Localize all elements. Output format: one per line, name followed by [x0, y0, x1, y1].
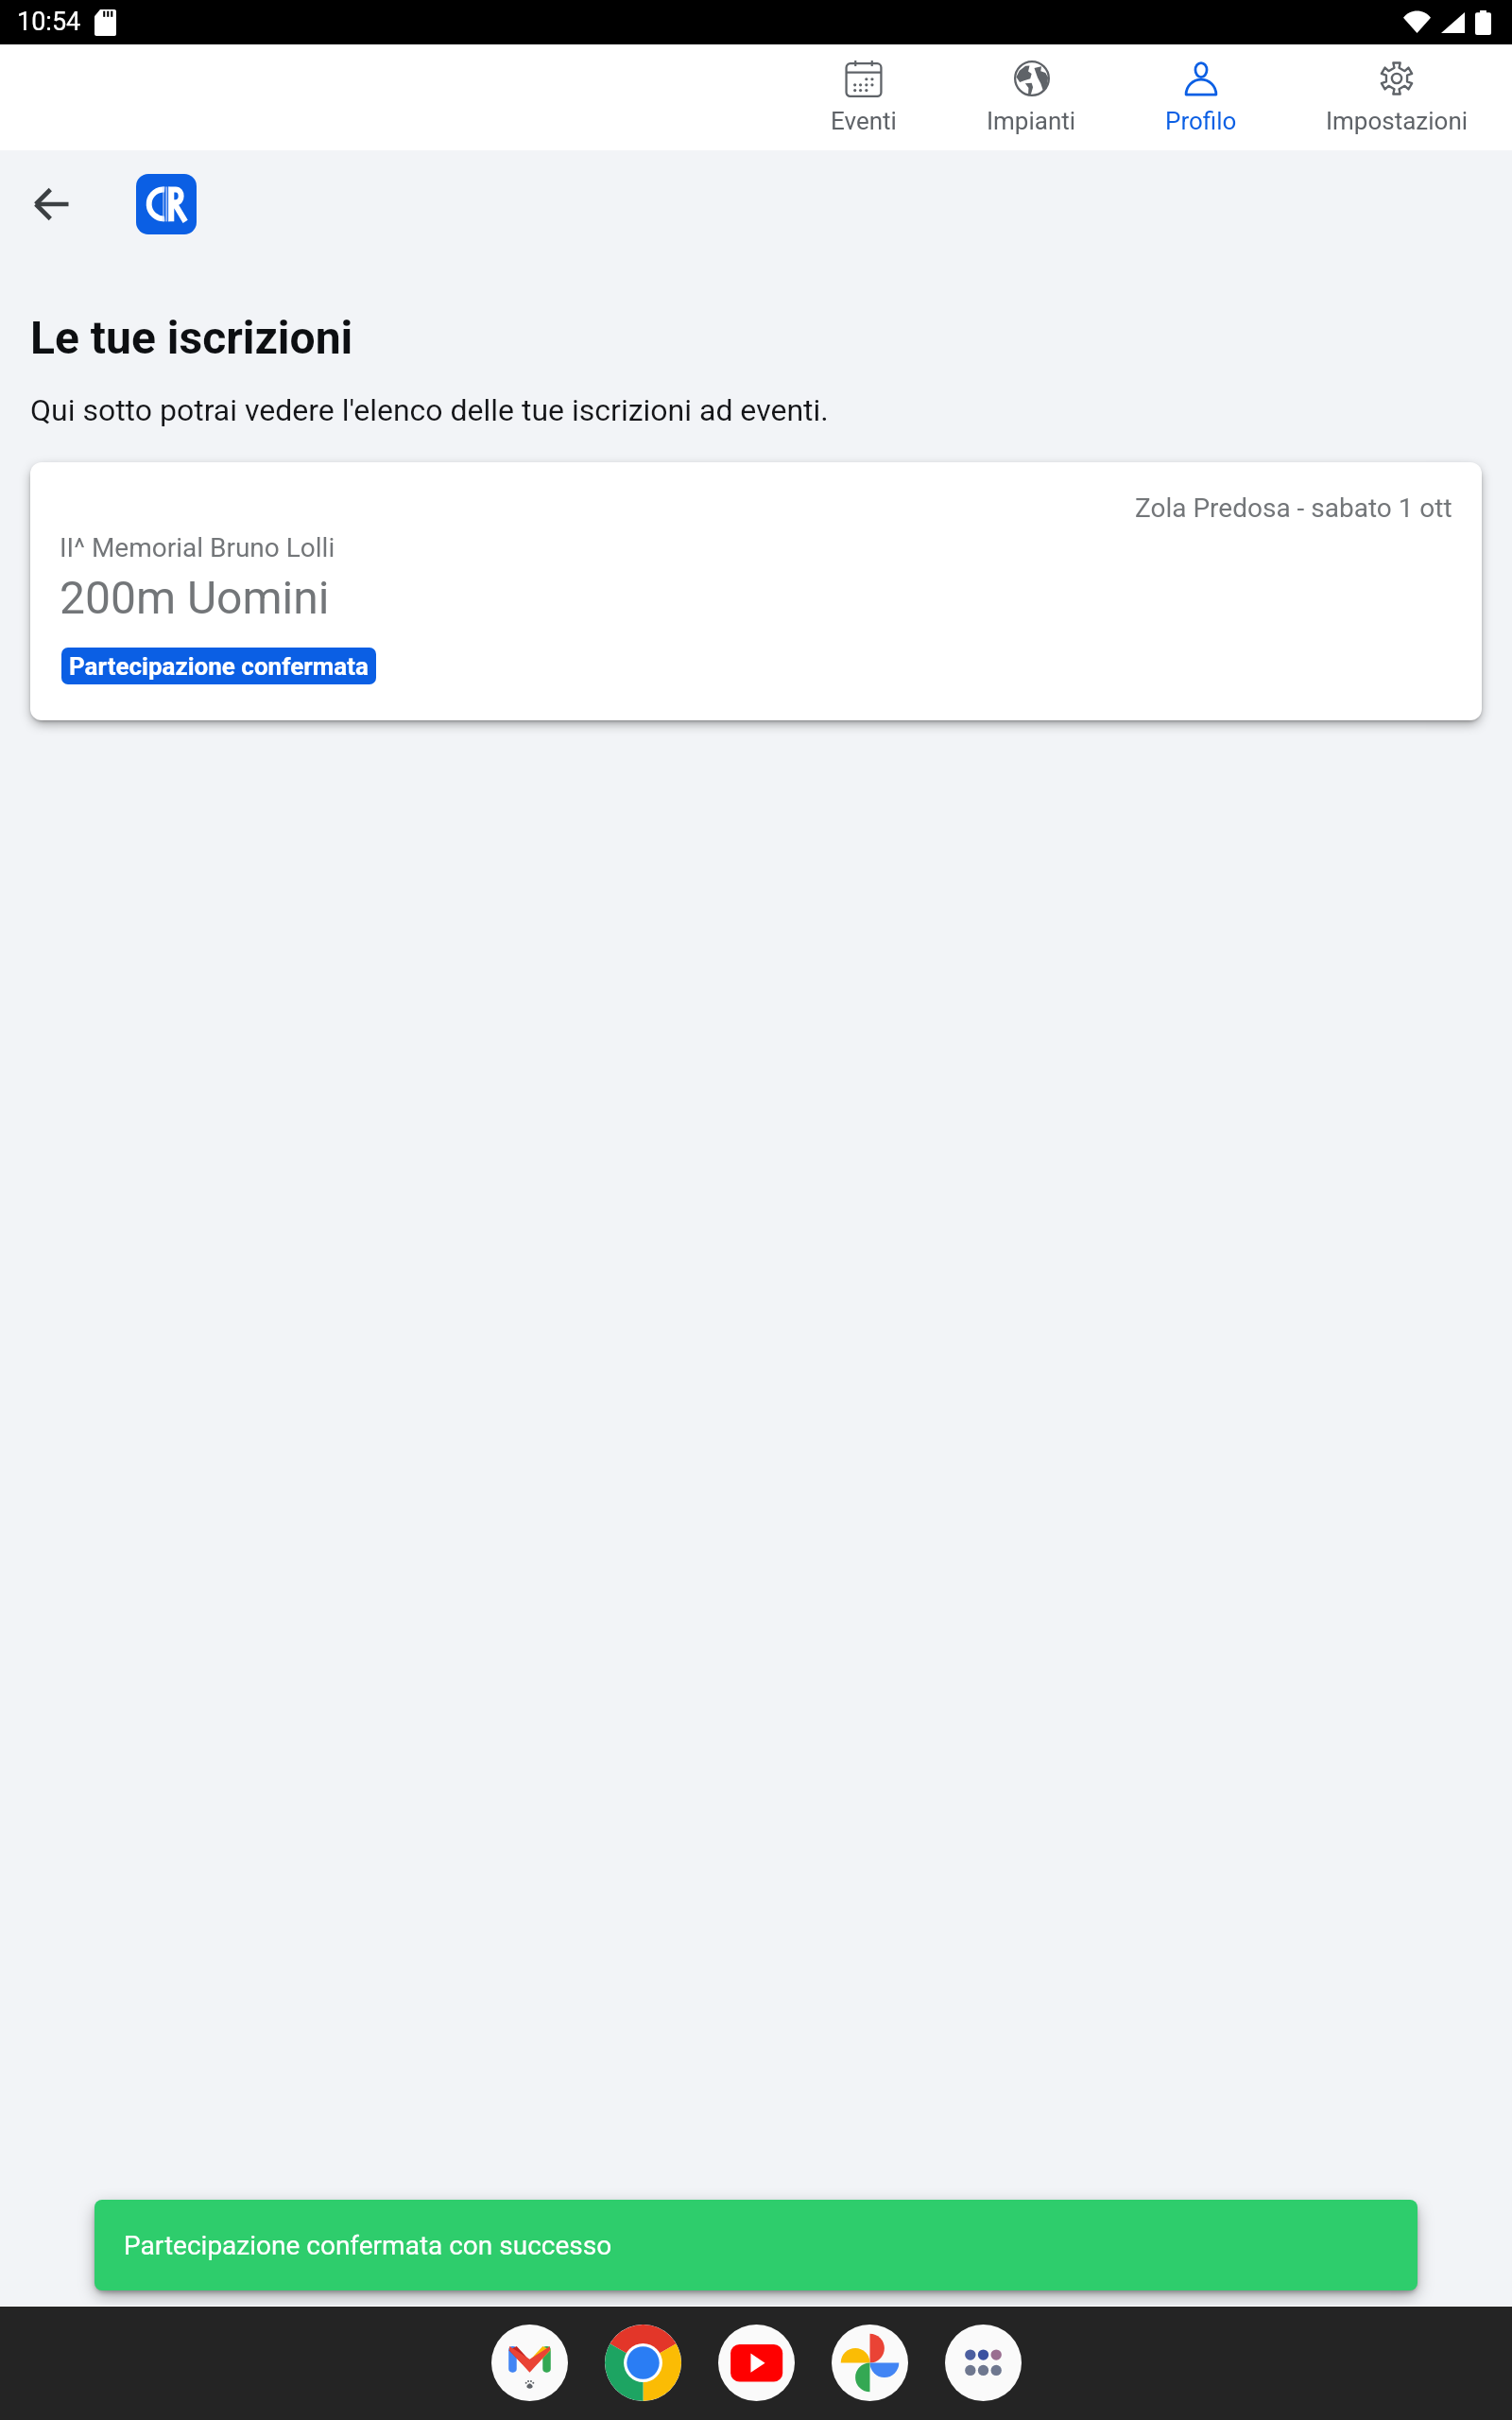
button[interactable]: Eventi	[769, 44, 958, 150]
button[interactable]: YouTube	[718, 2325, 795, 2401]
staticText: Eventi	[831, 107, 897, 135]
button[interactable]: Google Foto	[832, 2325, 908, 2401]
staticText: Impostazioni	[1326, 107, 1469, 135]
button[interactable]: Chrome	[605, 2325, 681, 2401]
staticText: 200m Uomini	[60, 571, 330, 624]
staticText: II^ Memorial Bruno Lolli	[60, 532, 335, 563]
button[interactable]: Partecipazione confermata	[61, 648, 376, 684]
staticText: Qui sotto potrai vedere l'elenco delle t…	[30, 392, 829, 428]
staticText: Profilo	[1165, 107, 1237, 135]
staticText: Partecipazione confermata	[69, 652, 369, 681]
staticText: Le tue iscrizioni	[30, 311, 353, 364]
button[interactable]: Logo CR	[136, 174, 197, 234]
button[interactable]: Indietro	[19, 171, 85, 236]
staticText: Impianti	[987, 107, 1076, 135]
button[interactable]: Partecipazione confermata con successo	[94, 2200, 1417, 2290]
button[interactable]: Impianti	[936, 44, 1126, 150]
staticText: Zola Predosa - sabato 1 ott	[1135, 493, 1452, 524]
staticText: Partecipazione confermata con successo	[124, 2230, 612, 2261]
button[interactable]: Zola Predosa - sabato 1 ott	[30, 462, 1482, 720]
staticText: 10:54	[17, 7, 81, 37]
button[interactable]: Profilo	[1107, 44, 1296, 150]
button[interactable]: Tutte le app	[945, 2325, 1022, 2401]
button[interactable]: Impostazioni	[1280, 44, 1512, 150]
button[interactable]: Gmail	[491, 2325, 568, 2401]
